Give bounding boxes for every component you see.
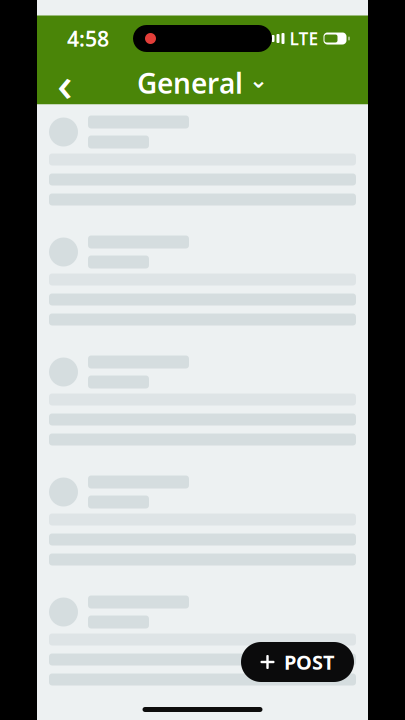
button[interactable]: Back — [45, 61, 85, 104]
staticText: ‹ — [57, 51, 73, 115]
button[interactable]: POST — [241, 642, 354, 682]
button[interactable]: General — [127, 61, 278, 104]
staticText: LTE — [289, 27, 318, 50]
staticText: General — [137, 64, 243, 102]
staticText: ⌄ — [249, 67, 268, 93]
staticText: POST — [284, 649, 335, 675]
staticText: 4:58 — [67, 24, 109, 53]
